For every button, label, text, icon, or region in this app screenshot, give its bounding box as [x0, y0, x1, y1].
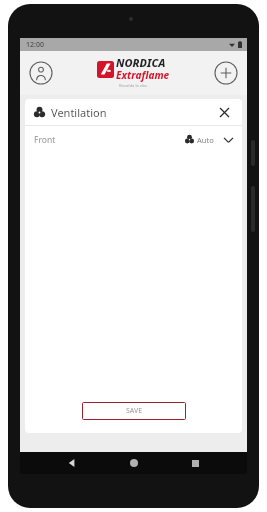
button[interactable]: Back [62, 453, 82, 473]
button[interactable]: Account [26, 58, 56, 88]
staticText: SAVE [126, 406, 143, 416]
button[interactable]: Recent apps [185, 453, 205, 473]
staticText: Auto [197, 135, 214, 145]
staticText: Ventilation [51, 105, 107, 120]
staticText: Front [34, 134, 56, 146]
button[interactable]: Home [124, 453, 144, 473]
button[interactable]: Close [215, 103, 233, 121]
staticText: Extraflame [116, 68, 170, 82]
staticText: Riscalda la vita. [119, 83, 148, 88]
staticText: NORDICA [116, 55, 166, 70]
button[interactable]: SAVE [82, 402, 186, 420]
staticText: 12:00 [26, 40, 44, 50]
button[interactable]: Add [211, 58, 241, 88]
button[interactable]: Front [25, 126, 242, 153]
